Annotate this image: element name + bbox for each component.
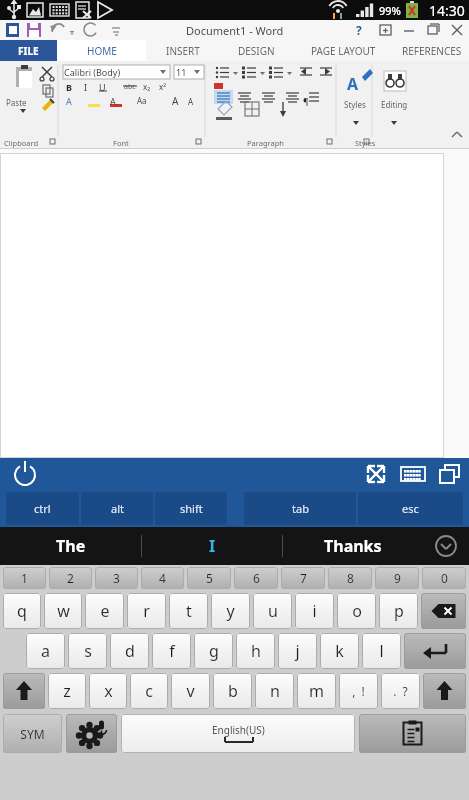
button[interactable]: HOME: [57, 40, 146, 61]
button[interactable]: f: [152, 633, 191, 669]
button[interactable]: a: [26, 633, 65, 669]
button[interactable]: PAGE LAYOUT: [292, 40, 394, 61]
staticText: REFERENCES: [402, 44, 462, 58]
button[interactable]: l: [362, 633, 401, 669]
button[interactable]: n: [255, 673, 294, 709]
staticText: 0: [441, 570, 448, 586]
staticText: shift: [180, 501, 203, 516]
button[interactable]: . ?: [381, 673, 420, 709]
button[interactable]: English(US): [121, 714, 355, 753]
staticText: FILE: [18, 44, 39, 58]
button[interactable]: 0: [422, 567, 466, 589]
staticText: Paragraph: [247, 138, 284, 148]
button[interactable]: esc: [358, 492, 463, 525]
button[interactable]: r: [127, 593, 166, 629]
staticText: PAGE LAYOUT: [311, 44, 376, 58]
button[interactable]: tab: [244, 492, 356, 525]
button[interactable]: The: [0, 527, 141, 565]
button[interactable]: s: [68, 633, 107, 669]
staticText: Calibri (Body): [64, 66, 121, 78]
button[interactable]: 3: [95, 567, 138, 589]
staticText: u: [268, 600, 278, 622]
button[interactable]: d: [110, 633, 149, 669]
staticText: ctrl: [34, 501, 51, 516]
button[interactable]: 2: [49, 567, 92, 589]
staticText: 5: [206, 570, 213, 586]
button[interactable]: e: [85, 593, 124, 629]
button[interactable]: REFERENCES: [394, 40, 469, 61]
staticText: Aa: [137, 95, 147, 106]
staticText: 7: [300, 570, 307, 586]
button[interactable]: alt: [81, 492, 153, 525]
staticText: p: [394, 600, 404, 622]
staticText: v: [186, 680, 195, 702]
button[interactable]: Clipboard: [359, 714, 466, 753]
staticText: I: [84, 81, 88, 93]
staticText: x: [104, 680, 113, 702]
staticText: f: [169, 640, 175, 662]
staticText: ¶: [303, 95, 309, 107]
button[interactable]: Shift: [423, 673, 466, 709]
button[interactable]: o: [337, 593, 376, 629]
staticText: 99%: [379, 3, 401, 18]
button[interactable]: Power: [10, 459, 40, 489]
button[interactable]: u: [253, 593, 292, 629]
button[interactable]: 7: [281, 567, 325, 589]
button[interactable]: y: [211, 593, 250, 629]
staticText: i: [312, 600, 317, 622]
button[interactable]: DESIGN: [220, 40, 292, 61]
button[interactable]: shift: [155, 492, 227, 525]
button[interactable]: 4: [141, 567, 184, 589]
button[interactable]: Keyboard: [401, 465, 425, 483]
button[interactable]: p: [379, 593, 418, 629]
button[interactable]: ctrl: [6, 492, 79, 525]
button[interactable]: k: [320, 633, 359, 669]
staticText: z: [63, 680, 71, 702]
button[interactable]: FILE: [0, 40, 57, 61]
staticText: n: [270, 680, 280, 702]
staticText: 1: [21, 570, 28, 586]
button[interactable]: v: [171, 673, 210, 709]
button[interactable]: Thanks: [283, 527, 423, 565]
button[interactable]: 9: [375, 567, 419, 589]
button[interactable]: Backspace: [421, 593, 466, 629]
staticText: Clipboard: [4, 138, 39, 148]
button[interactable]: , !: [339, 673, 378, 709]
button[interactable]: q: [3, 593, 41, 629]
staticText: 11: [176, 66, 187, 78]
button[interactable]: w: [44, 593, 82, 629]
button[interactable]: 8: [328, 567, 372, 589]
button[interactable]: t: [169, 593, 208, 629]
staticText: Styles: [355, 138, 376, 148]
button[interactable]: g: [194, 633, 233, 669]
button[interactable]: INSERT: [146, 40, 220, 61]
staticText: U: [99, 81, 106, 93]
button[interactable]: 5: [187, 567, 231, 589]
button[interactable]: z: [48, 673, 86, 709]
button[interactable]: m: [297, 673, 336, 709]
staticText: SYM: [20, 726, 45, 742]
button[interactable]: Shift: [3, 673, 45, 709]
button[interactable]: j: [278, 633, 317, 669]
button[interactable]: h: [236, 633, 275, 669]
button[interactable]: [0, 153, 444, 458]
button[interactable]: Expand: [365, 463, 387, 485]
staticText: , !: [352, 683, 365, 699]
staticText: k: [335, 640, 344, 662]
staticText: A: [66, 95, 72, 107]
button[interactable]: Expand suggestions: [423, 527, 469, 565]
button[interactable]: 6: [234, 567, 278, 589]
button[interactable]: b: [213, 673, 252, 709]
button[interactable]: c: [130, 673, 168, 709]
button[interactable]: Enter: [404, 633, 466, 669]
button[interactable]: x: [89, 673, 127, 709]
button[interactable]: Windows: [439, 463, 461, 485]
staticText: English(US): [212, 723, 265, 737]
staticText: 8: [347, 570, 354, 586]
button[interactable]: I: [142, 527, 282, 565]
button[interactable]: i: [295, 593, 334, 629]
button[interactable]: SYM: [3, 714, 62, 753]
staticText: Paste: [6, 97, 27, 108]
button[interactable]: Settings and voice input: [66, 714, 117, 753]
button[interactable]: 1: [3, 567, 46, 589]
